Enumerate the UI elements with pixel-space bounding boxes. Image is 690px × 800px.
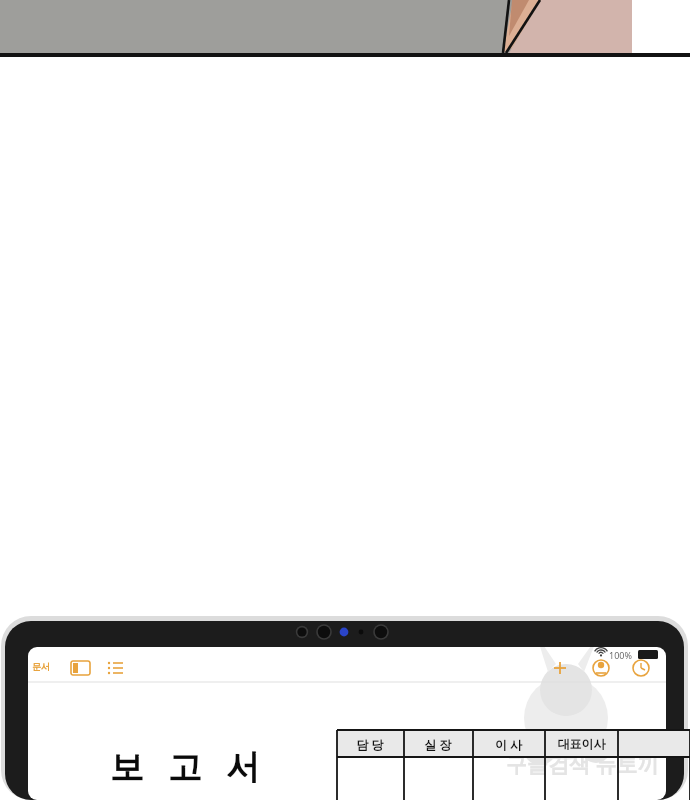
button[interactable]: Comic panel: tablet showing report docum… xyxy=(0,0,690,800)
